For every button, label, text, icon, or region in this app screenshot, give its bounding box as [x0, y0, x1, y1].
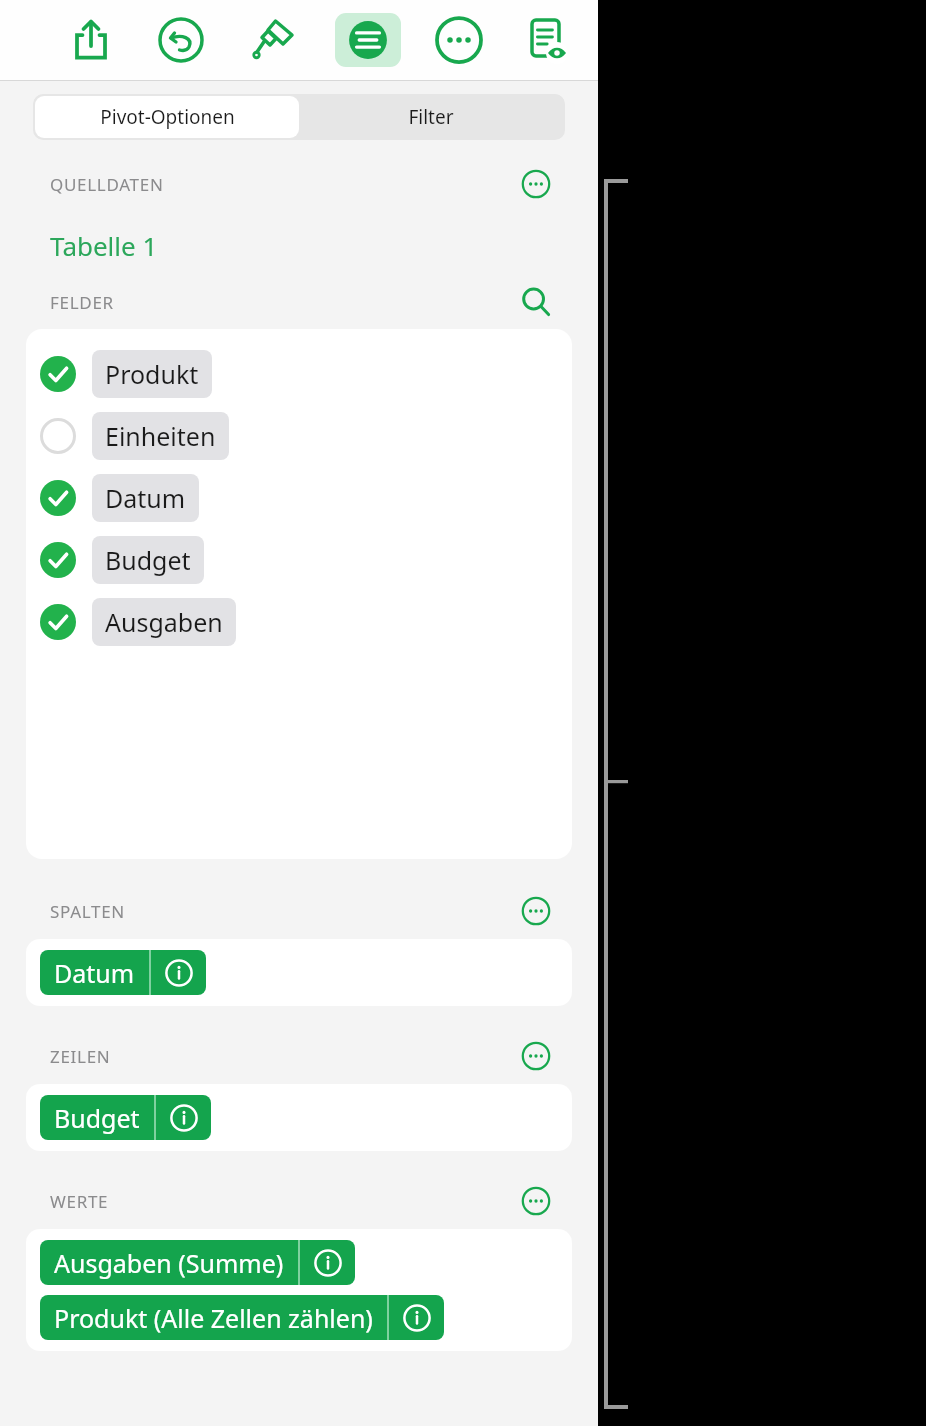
staticText: WERTE	[50, 1190, 109, 1213]
button[interactable]: Filter	[299, 96, 563, 138]
staticText: Budget	[105, 543, 191, 577]
button[interactable]: Info	[300, 1240, 355, 1285]
button[interactable]: Budget	[26, 529, 572, 591]
staticText: SPALTEN	[50, 900, 125, 923]
staticText: Ausgaben	[105, 605, 223, 639]
button[interactable]: More options	[514, 162, 558, 206]
staticText: Pivot-Optionen	[100, 104, 235, 130]
staticText: Filter	[408, 104, 454, 130]
staticText: Ausgaben (Summe)	[54, 1246, 284, 1280]
button[interactable]: Ausgaben	[26, 591, 572, 653]
button[interactable]: Einheiten	[26, 405, 572, 467]
button[interactable]: Format	[335, 13, 401, 67]
button[interactable]: Info	[389, 1295, 444, 1340]
button[interactable]: Toolbar action	[429, 10, 489, 70]
button[interactable]: Pivot-Optionen	[35, 96, 299, 138]
button[interactable]: Tabelle 1	[50, 228, 158, 263]
staticText: Produkt	[105, 357, 199, 391]
button[interactable]: Datum	[26, 467, 572, 529]
button[interactable]: Produkt (Alle Zellen zählen)	[40, 1295, 444, 1340]
staticText: Budget	[54, 1101, 140, 1135]
staticText: FELDER	[50, 291, 114, 314]
staticText: Datum	[105, 481, 186, 515]
button[interactable]: Produkt	[26, 343, 572, 405]
staticText: QUELLDATEN	[50, 173, 164, 196]
button[interactable]: Info	[151, 950, 206, 995]
button[interactable]: Datum	[40, 950, 206, 995]
button[interactable]: Toolbar action	[61, 10, 121, 70]
button[interactable]: Ausgaben (Summe)	[40, 1240, 355, 1285]
staticText: Einheiten	[105, 419, 216, 453]
button[interactable]: More options	[514, 1179, 558, 1223]
button[interactable]: Toolbar action	[151, 10, 211, 70]
button[interactable]: Budget	[40, 1095, 211, 1140]
button[interactable]: More options	[514, 889, 558, 933]
staticText: ZEILEN	[50, 1045, 111, 1068]
staticText: Produkt (Alle Zellen zählen)	[54, 1301, 373, 1335]
button[interactable]: Info	[156, 1095, 211, 1140]
button[interactable]: Toolbar action	[243, 10, 303, 70]
button[interactable]: Search	[514, 280, 558, 324]
button[interactable]: More options	[514, 1034, 558, 1078]
staticText: Datum	[54, 956, 135, 990]
button[interactable]: Toolbar action	[516, 10, 576, 70]
